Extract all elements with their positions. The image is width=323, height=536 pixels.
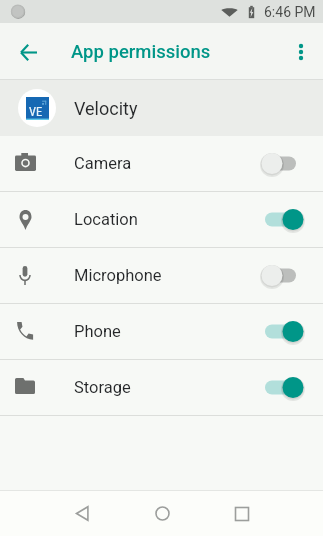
- staticText: VE: [29, 104, 43, 119]
- button[interactable]: Permission on: [265, 304, 323, 359]
- button[interactable]: Phone: [0, 304, 323, 359]
- button[interactable]: Storage: [0, 360, 323, 415]
- staticText: Storage: [74, 378, 131, 397]
- button[interactable]: More options: [285, 36, 317, 68]
- button[interactable]: VE: [0, 80, 323, 136]
- button[interactable]: Recent apps: [202, 491, 282, 536]
- staticText: Phone: [74, 322, 121, 341]
- button[interactable]: Permission on: [265, 192, 323, 247]
- button[interactable]: Permission off: [265, 136, 323, 191]
- button[interactable]: Microphone: [0, 248, 323, 303]
- button[interactable]: Back: [42, 491, 122, 536]
- staticText: Microphone: [74, 266, 162, 285]
- button[interactable]: Location: [0, 192, 323, 247]
- button[interactable]: Camera: [0, 136, 323, 191]
- button[interactable]: Home: [122, 491, 202, 536]
- button[interactable]: Back: [10, 34, 46, 70]
- staticText: 6:46 PM: [264, 4, 316, 20]
- button[interactable]: Permission off: [265, 248, 323, 303]
- staticText: Location: [74, 210, 138, 229]
- staticText: App permissions: [71, 41, 211, 63]
- button[interactable]: Permission on: [265, 360, 323, 415]
- staticText: Velocity: [74, 98, 138, 119]
- staticText: Camera: [74, 154, 132, 173]
